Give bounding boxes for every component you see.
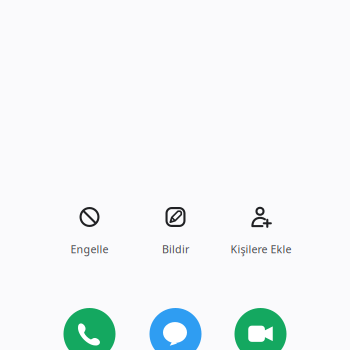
button[interactable]: Mesaj — [149, 308, 201, 350]
button[interactable]: Ara — [63, 308, 115, 350]
button[interactable]: Görüntülü ara — [234, 308, 286, 350]
button[interactable]: Kişilere Ekle — [218, 199, 304, 257]
button[interactable]: Bildir — [132, 199, 218, 257]
staticText: Bildir — [162, 242, 189, 256]
staticText: Engelle — [70, 242, 108, 256]
staticText: Kişilere Ekle — [230, 242, 291, 256]
button[interactable]: Engelle — [46, 199, 132, 257]
